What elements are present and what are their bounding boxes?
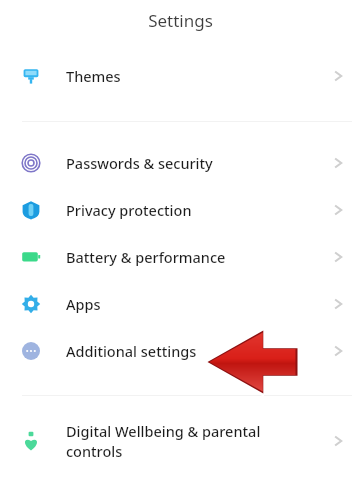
staticText: Privacy protection: [66, 200, 330, 220]
staticText: Digital Wellbeing & parental controls: [66, 421, 330, 461]
button[interactable]: Passwords & security: [0, 139, 360, 186]
staticText: Themes: [66, 66, 330, 86]
button[interactable]: Themes: [0, 53, 360, 99]
other: Annotation arrow pointing to Additional …: [204, 327, 301, 397]
button[interactable]: Digital Wellbeing & parental controls: [0, 415, 360, 467]
button[interactable]: Battery & performance: [0, 233, 360, 280]
staticText: Battery & performance: [66, 247, 330, 267]
button[interactable]: Additional settings: [0, 327, 360, 374]
staticText: Additional settings: [66, 341, 330, 361]
button[interactable]: Privacy protection: [0, 186, 360, 233]
staticText: Apps: [66, 294, 330, 314]
button[interactable]: Apps: [0, 280, 360, 327]
staticText: Passwords & security: [66, 153, 330, 173]
staticText: Settings: [148, 9, 213, 32]
